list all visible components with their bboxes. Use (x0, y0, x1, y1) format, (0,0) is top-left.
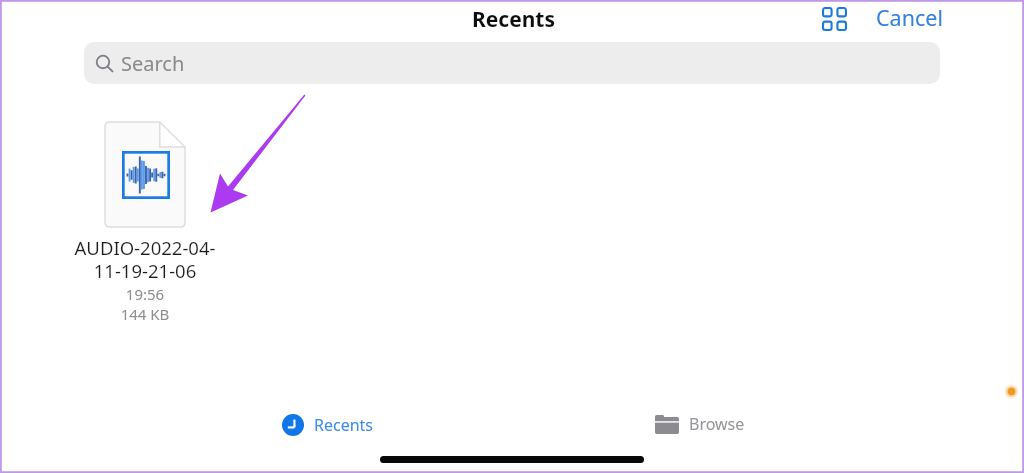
staticText: Search (121, 50, 185, 77)
staticText: Recents (314, 414, 374, 436)
button[interactable]: Grid view (816, 1, 853, 37)
staticText: AUDIO-2022-04- 11-19-21-06 (57, 235, 233, 283)
button[interactable]: Recents (277, 408, 379, 442)
button[interactable]: Search (84, 42, 940, 84)
button[interactable]: Recents (452, 3, 575, 35)
button[interactable]: AUDIO-2022-04- 11-19-21-06 (57, 122, 233, 324)
staticText: 144 KB (57, 304, 233, 324)
button[interactable]: Cancel (866, 0, 953, 34)
staticText: Recents (472, 5, 555, 34)
staticText: Cancel (876, 3, 943, 32)
button[interactable]: Browse (650, 407, 750, 441)
staticText: 19:56 (57, 284, 233, 304)
staticText: Browse (689, 413, 745, 435)
